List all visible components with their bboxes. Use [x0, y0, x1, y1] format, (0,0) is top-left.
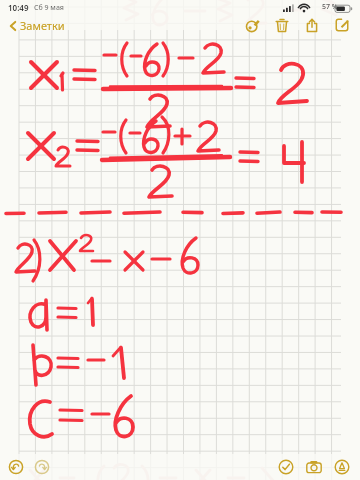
staticText: Заметки	[20, 18, 65, 33]
button[interactable]: Undo	[4, 454, 28, 480]
button[interactable]: Заметки	[6, 16, 68, 35]
staticText: 57 %	[322, 2, 338, 12]
staticText: 10:49	[8, 2, 29, 13]
button[interactable]: Markup	[330, 454, 354, 480]
button[interactable]: Redo	[30, 454, 54, 480]
staticText: Сб 9 мая	[34, 3, 64, 13]
button[interactable]: Delete	[272, 14, 292, 36]
button[interactable]: Share	[302, 14, 322, 36]
button[interactable]: Done	[274, 454, 298, 480]
button[interactable]: Camera	[302, 454, 326, 480]
button[interactable]: New note	[332, 14, 352, 36]
button[interactable]: Markup pen	[242, 14, 264, 36]
